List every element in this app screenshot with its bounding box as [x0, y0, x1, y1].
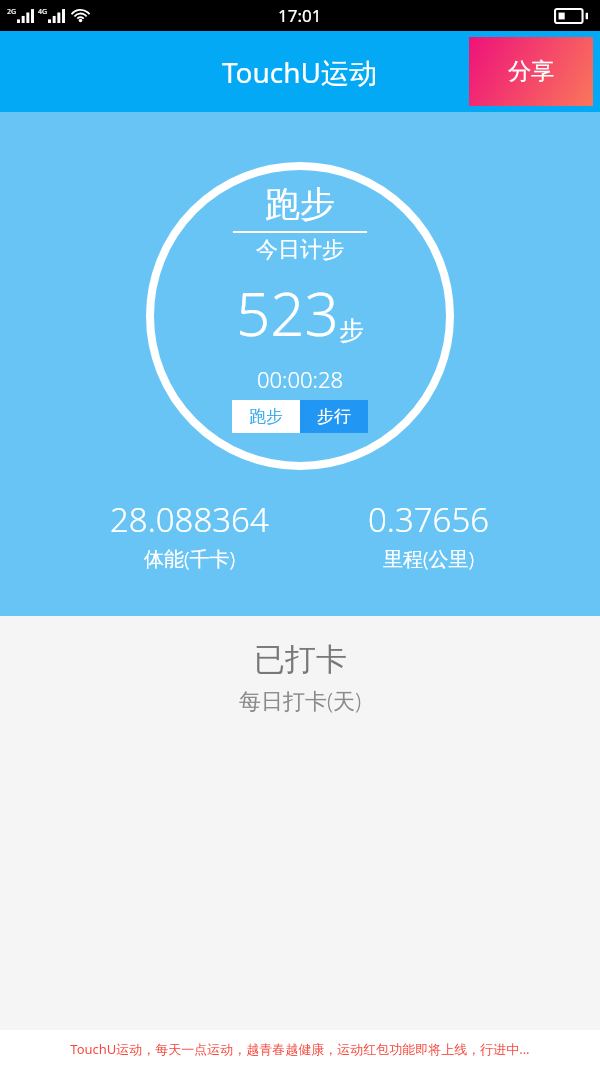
staticText: 每日打卡(天) — [239, 685, 362, 715]
staticText: 523 — [236, 272, 339, 354]
staticText: 跑步 — [265, 182, 335, 226]
staticText: 0.37656 — [368, 497, 490, 542]
staticText: 步行 — [317, 406, 351, 427]
button[interactable]: 分享 Share — [469, 37, 593, 106]
staticText: 步 — [339, 315, 364, 346]
staticText: 4G — [38, 7, 48, 17]
button[interactable]: 步行 — [300, 400, 368, 433]
staticText: 跑步 — [249, 406, 283, 427]
staticText: 今日计步 — [256, 236, 344, 264]
staticText: 17:01 — [278, 4, 322, 27]
staticText: 分享 — [508, 57, 554, 86]
staticText: 2G — [7, 7, 17, 17]
staticText: 00:00:28 — [257, 364, 344, 394]
staticText: 体能(千卡) — [144, 545, 236, 572]
staticText: 里程(公里) — [383, 545, 475, 572]
staticText: 28.088364 — [110, 497, 269, 542]
staticText: 已打卡 — [254, 640, 347, 679]
staticText: TouchU运动，每天一点运动，越青春越健康，运动红包功能即将上线，行进中… — [70, 1040, 530, 1058]
staticText: TouchU运动 — [222, 53, 378, 91]
button[interactable]: 已打卡 — [0, 616, 600, 725]
button[interactable]: 跑步 — [232, 400, 300, 433]
